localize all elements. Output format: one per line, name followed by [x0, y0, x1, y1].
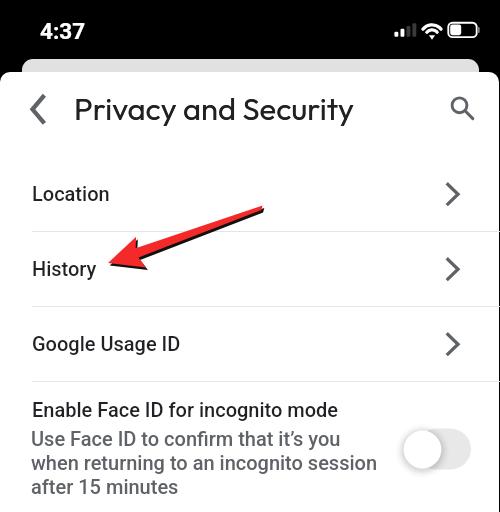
staticText: Google Usage ID	[32, 332, 181, 355]
button[interactable]: Location	[0, 157, 500, 231]
button[interactable]: Google Usage ID	[0, 307, 500, 381]
button[interactable]: Search	[443, 88, 477, 122]
staticText: History	[32, 257, 97, 280]
button[interactable]: History	[0, 232, 500, 306]
staticText: Use Face ID to confirm that it’s you whe…	[31, 427, 378, 499]
button[interactable]: Enable Face ID for incognito mode	[0, 382, 500, 512]
button[interactable]: Back	[14, 88, 48, 122]
staticText: Location	[32, 182, 110, 205]
staticText: Privacy and Security	[74, 89, 355, 128]
staticText: Enable Face ID for incognito mode	[32, 398, 339, 421]
button[interactable]: Enable Face ID for incognito mode	[396, 416, 480, 476]
staticText: 4:37	[40, 18, 86, 44]
staticText: Privacy and Security	[74, 89, 355, 128]
